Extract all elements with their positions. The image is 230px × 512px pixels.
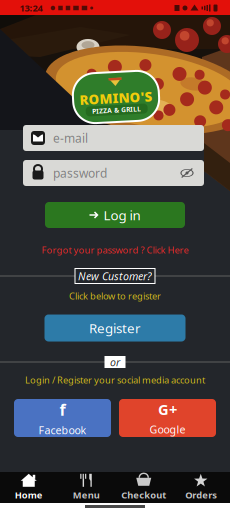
staticText: Checkout [121,489,166,501]
staticText: Click below to register [69,290,161,302]
staticText: G+ [158,400,177,419]
staticText: Log in [103,206,140,224]
button[interactable]: Show password [180,167,194,179]
staticText: PIZZA & GRILL [91,106,140,114]
button[interactable]: Menu [57,472,115,503]
staticText: Orders [185,489,217,501]
button[interactable]: f [14,399,111,437]
button[interactable]: Home [0,472,57,503]
button[interactable]: Log in [45,202,185,228]
button[interactable]: G+ [119,399,216,437]
staticText: or [110,355,120,369]
staticText: Google [149,422,185,436]
staticText: ROMINO'S [79,89,152,107]
staticText: Menu [73,489,100,501]
staticText: New Customer? [78,269,152,283]
staticText: Register [89,319,141,337]
button[interactable]: Forgot your password ? Click Here [41,244,188,256]
staticText: password [53,165,107,181]
staticText: 13:24 [19,2,42,14]
staticText: Home [15,489,43,501]
button[interactable]: Orders [172,472,230,503]
button[interactable]: Register [44,314,185,341]
staticText: Login / Register your social media accou… [25,374,205,386]
staticText: Forgot your password ? Click Here [41,244,188,256]
staticText: f [59,399,65,420]
staticText: e-mail [53,130,88,146]
button[interactable]: Checkout [115,472,172,503]
staticText: Facebook [38,423,86,437]
